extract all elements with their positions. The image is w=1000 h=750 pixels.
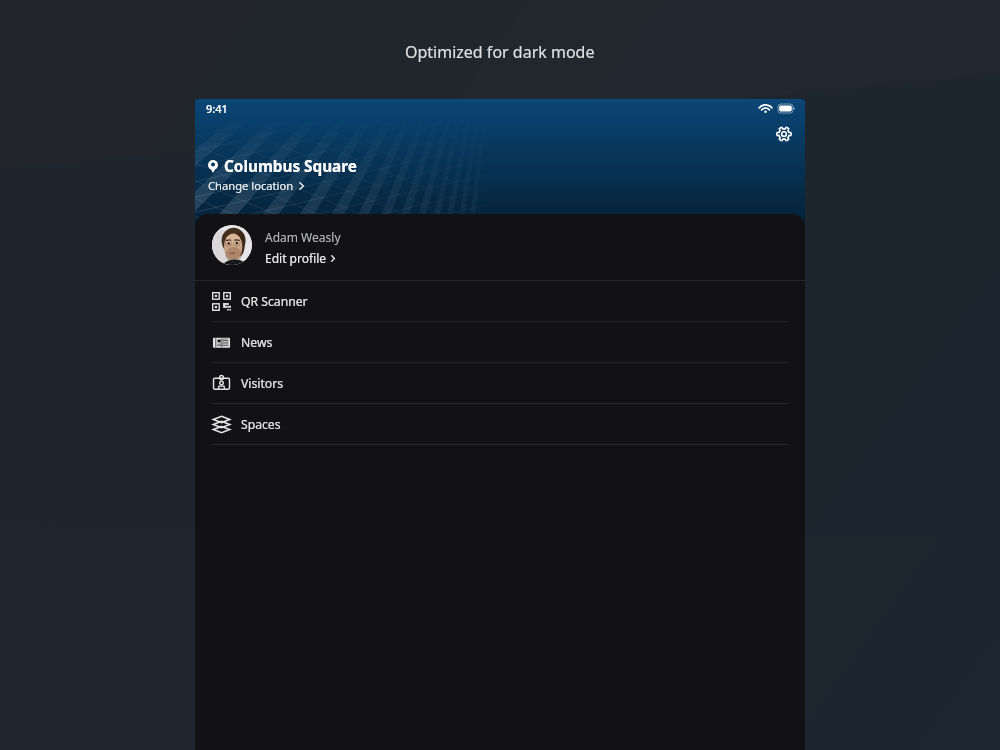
staticText: News xyxy=(241,334,273,351)
staticText: 9:41 xyxy=(206,101,228,116)
staticText: QR Scanner xyxy=(241,293,308,310)
button[interactable]: News xyxy=(195,322,805,362)
staticText: Spaces xyxy=(241,416,281,433)
staticText: Adam Weasly xyxy=(265,229,341,245)
button[interactable]: Spaces xyxy=(195,404,805,444)
staticText: Columbus Square xyxy=(224,156,357,177)
staticText: Edit profile xyxy=(265,250,327,266)
staticText: Optimized for dark mode xyxy=(405,41,595,63)
button[interactable]: QR Scanner xyxy=(195,281,805,321)
button[interactable]: Settings xyxy=(771,121,797,147)
button[interactable]: Change location xyxy=(208,178,304,193)
button[interactable]: Adam Weasly xyxy=(195,214,805,280)
staticText: Visitors xyxy=(241,375,284,392)
button[interactable]: Visitors xyxy=(195,363,805,403)
staticText: Change location xyxy=(208,178,294,193)
